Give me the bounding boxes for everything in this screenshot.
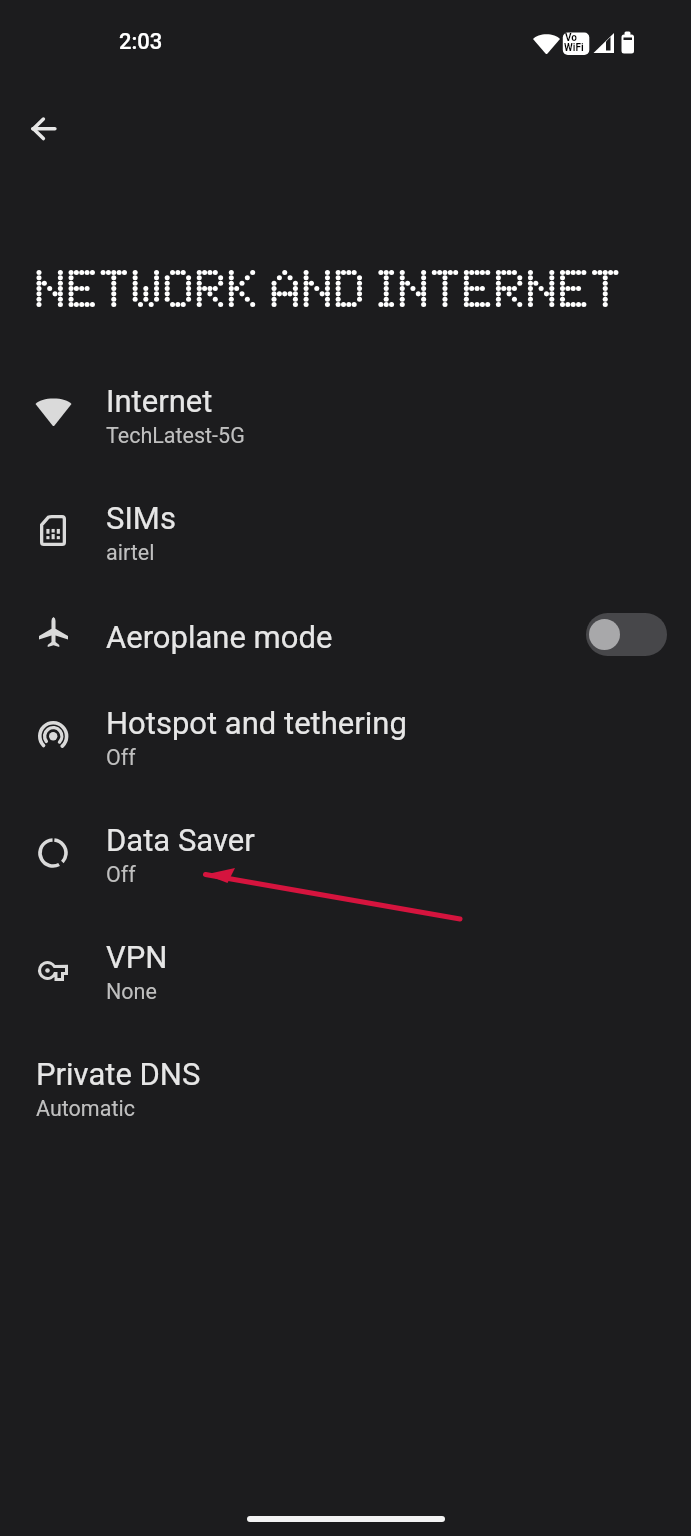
staticText: Automatic	[36, 1096, 135, 1121]
staticText: Vo	[565, 32, 577, 44]
button[interactable]: VPN	[0, 921, 691, 1038]
staticText: WiFi	[564, 42, 584, 54]
staticText: Aeroplane mode	[106, 619, 333, 655]
button[interactable]: Data Saver	[0, 804, 691, 921]
staticText: Private DNS	[36, 1056, 201, 1092]
button[interactable]: Aeroplane mode toggle	[586, 613, 667, 656]
staticText: Off	[106, 745, 136, 770]
staticText: 2:03	[119, 29, 163, 55]
button[interactable]: Back	[10, 96, 76, 162]
staticText: None	[106, 979, 157, 1004]
button[interactable]: Internet	[0, 365, 691, 482]
staticText: VPN	[106, 939, 168, 975]
staticText: airtel	[106, 540, 155, 565]
button[interactable]: SIMs	[0, 482, 691, 599]
button[interactable]: Private DNS	[0, 1038, 691, 1155]
button[interactable]: Hotspot and tethering	[0, 687, 691, 804]
staticText: TechLatest-5G	[106, 423, 245, 448]
staticText: Data Saver	[106, 822, 255, 858]
staticText: Off	[106, 862, 136, 887]
button[interactable]: Aeroplane mode	[0, 601, 691, 689]
staticText: Internet	[106, 383, 213, 419]
staticText: SIMs	[106, 500, 176, 536]
staticText: Hotspot and tethering	[106, 705, 407, 741]
